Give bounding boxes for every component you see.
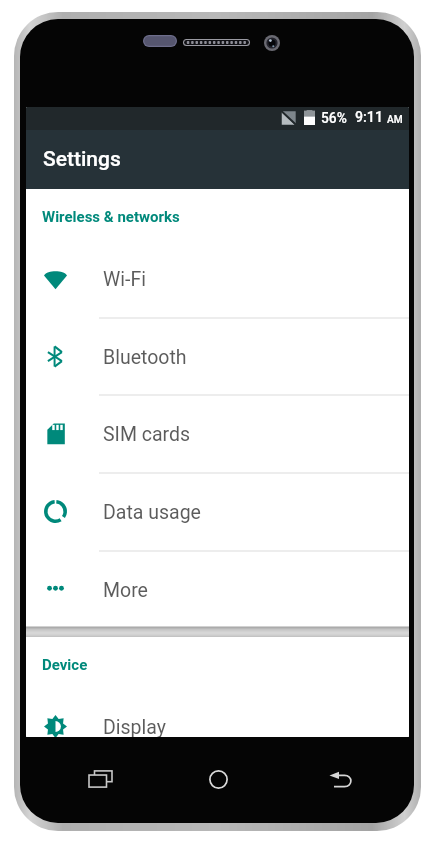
button[interactable]: Bluetooth bbox=[26, 318, 409, 395]
button[interactable]: Back bbox=[282, 737, 409, 822]
staticText: Bluetooth bbox=[103, 346, 187, 369]
staticText: More bbox=[103, 579, 148, 602]
button[interactable]: Display bbox=[26, 688, 409, 737]
staticText: SIM cards bbox=[103, 423, 191, 446]
staticText: Data usage bbox=[103, 501, 201, 524]
staticText: Wi-Fi bbox=[103, 268, 146, 291]
staticText: Device bbox=[42, 656, 88, 674]
button[interactable]: Recent apps bbox=[26, 737, 154, 822]
button[interactable]: More bbox=[26, 551, 409, 628]
staticText: Display bbox=[103, 716, 166, 737]
button[interactable]: Data usage bbox=[26, 473, 409, 550]
staticText: 9:11 bbox=[355, 109, 383, 126]
staticText: Wireless & networks bbox=[42, 208, 180, 226]
staticText: AM bbox=[387, 114, 403, 126]
button[interactable]: Wi-Fi bbox=[26, 240, 409, 317]
staticText: 56% bbox=[321, 110, 347, 126]
button[interactable]: Home bbox=[154, 737, 282, 822]
button[interactable]: SIM cards bbox=[26, 395, 409, 472]
staticText: Settings bbox=[43, 147, 121, 172]
